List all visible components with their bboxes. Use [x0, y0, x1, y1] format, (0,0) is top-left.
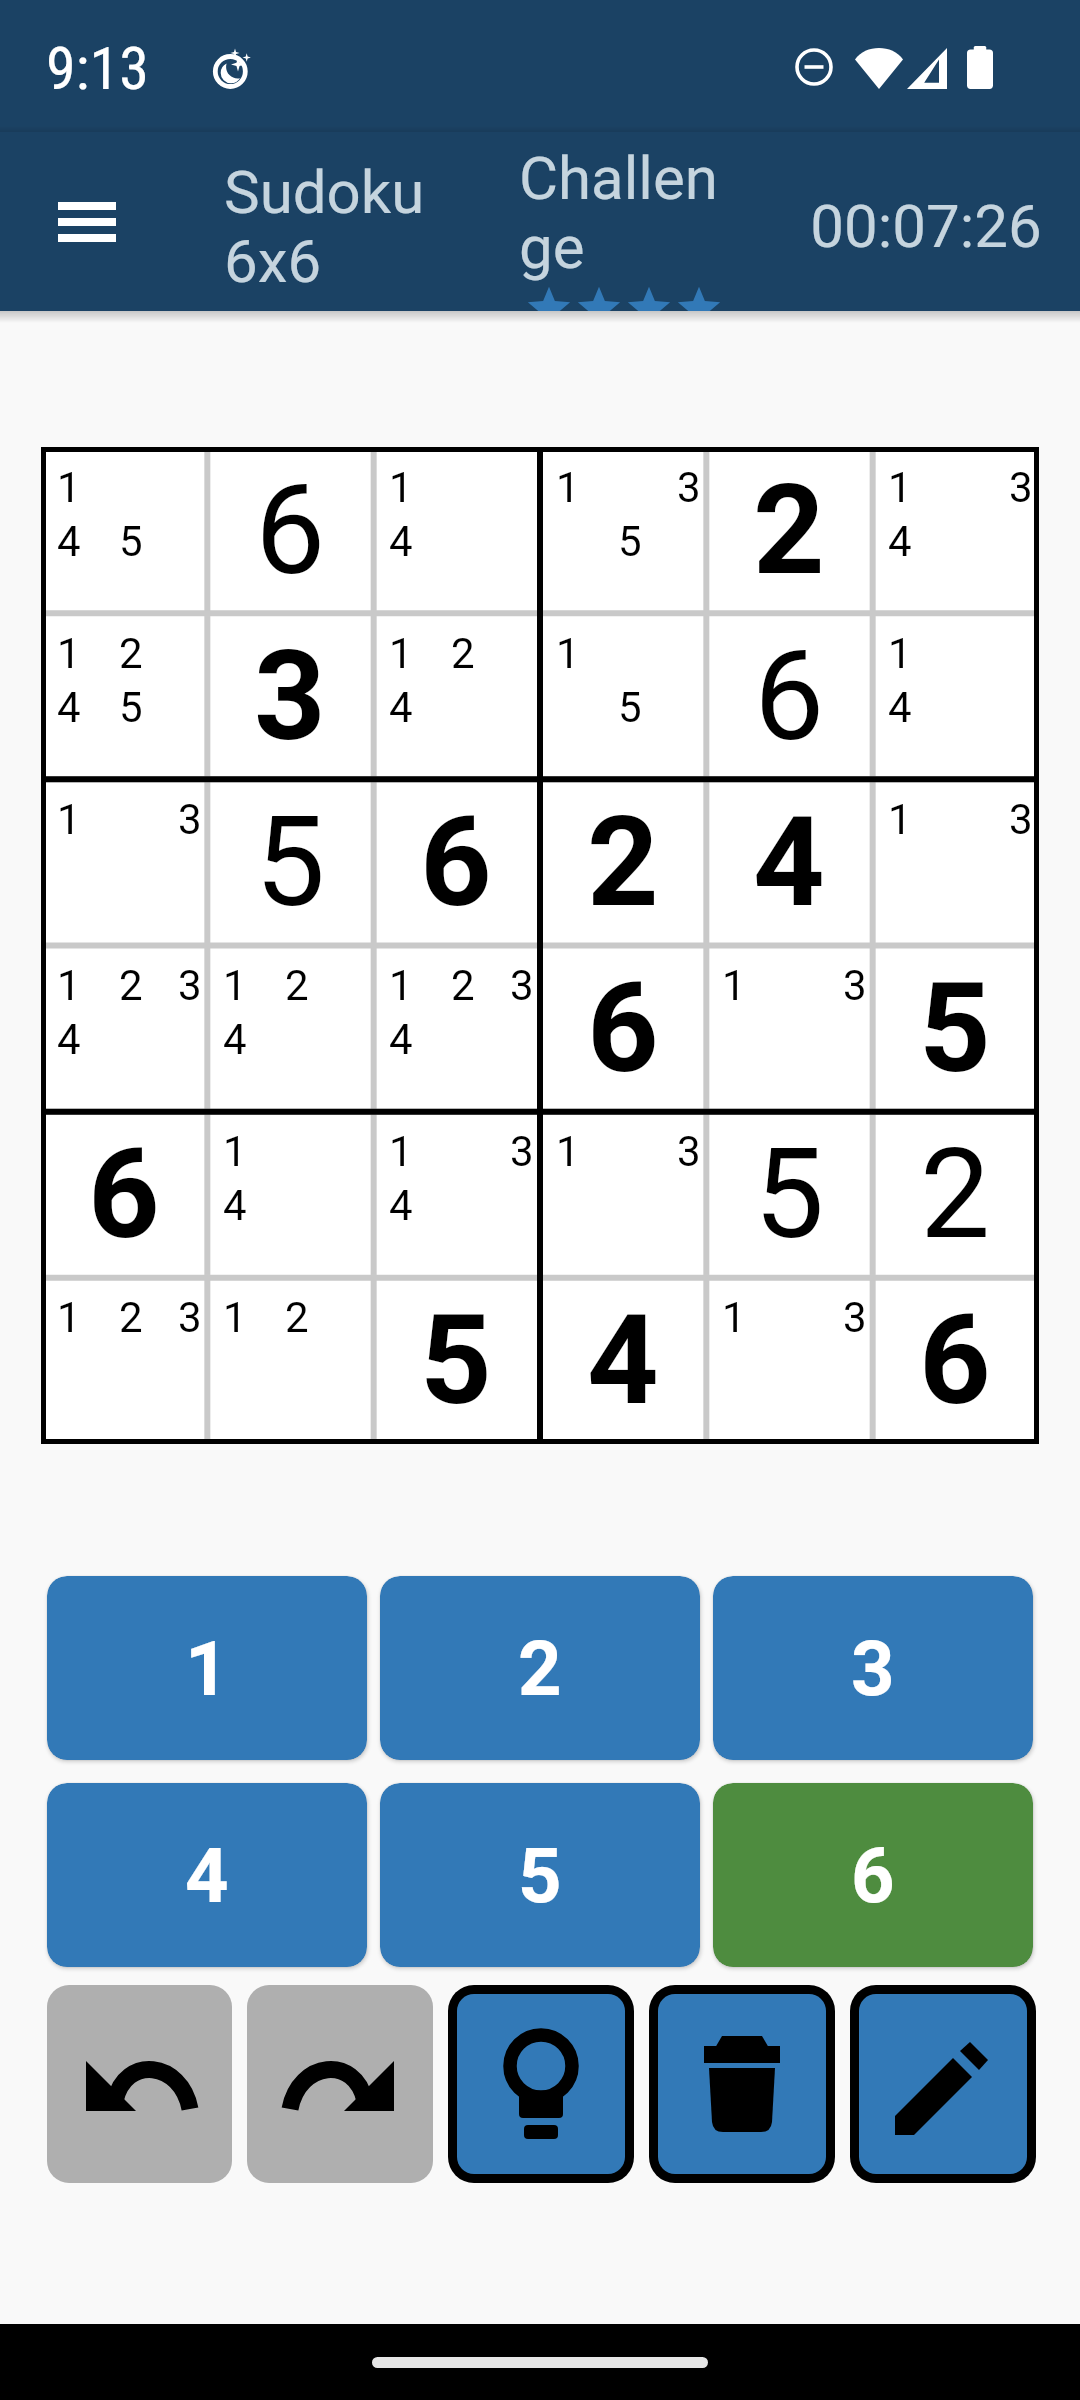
staticText: 3 — [510, 961, 534, 1010]
staticText: 6 — [587, 955, 659, 1101]
button[interactable]: 1 — [373, 613, 539, 779]
button[interactable]: 1 — [872, 613, 1038, 779]
staticText: 1 — [389, 961, 413, 1010]
button[interactable]: 2 — [706, 447, 872, 613]
button[interactable]: 1 — [41, 779, 207, 945]
staticText: 2 — [285, 1293, 309, 1342]
button[interactable]: 1 — [47, 1576, 367, 1760]
button[interactable]: 1 — [41, 1277, 207, 1443]
staticText: 9:13 — [46, 33, 149, 103]
button[interactable]: 1 — [706, 945, 872, 1111]
staticText: 1 — [223, 1293, 247, 1342]
staticText: 2 — [119, 961, 143, 1010]
button[interactable]: 6 — [207, 447, 373, 613]
staticText: 1 — [223, 1127, 247, 1176]
button[interactable]: 1 — [540, 447, 706, 613]
button[interactable]: 6 — [872, 1277, 1038, 1443]
button[interactable]: 1 — [207, 1277, 373, 1443]
staticText: Sudoku 6x6 — [224, 157, 434, 296]
button[interactable]: 4 — [706, 779, 872, 945]
button[interactable]: Undo — [47, 1985, 232, 2183]
staticText: 2 — [451, 961, 475, 1010]
staticText: 3 — [851, 1624, 895, 1713]
button[interactable]: 1 — [872, 447, 1038, 613]
button[interactable]: 5 — [706, 1111, 872, 1277]
staticText: 2 — [518, 1624, 562, 1713]
staticText: 3 — [178, 1293, 202, 1342]
staticText: 3 — [843, 1293, 867, 1342]
button[interactable]: 1 — [872, 779, 1038, 945]
button[interactable]: 1 — [373, 447, 539, 613]
staticText: 3 — [254, 623, 326, 769]
staticText: 4 — [753, 789, 825, 935]
button[interactable]: 1 — [373, 945, 539, 1111]
staticText: 4 — [389, 683, 413, 732]
staticText: 2 — [753, 457, 825, 603]
staticText: 1 — [556, 1127, 580, 1176]
staticText: 00:07:26 — [796, 191, 1056, 261]
button[interactable]: 1 — [41, 447, 207, 613]
button[interactable]: 3 — [713, 1576, 1033, 1760]
staticText: 5 — [119, 517, 143, 566]
staticText: 6 — [754, 623, 825, 769]
button[interactable]: 5 — [872, 945, 1038, 1111]
button[interactable]: 6 — [373, 779, 539, 945]
button[interactable]: 6 — [540, 945, 706, 1111]
button[interactable]: 1 — [41, 945, 207, 1111]
button[interactable]: 4 — [47, 1783, 367, 1967]
staticText: 1 — [57, 795, 81, 844]
staticText: 2 — [920, 1121, 991, 1267]
button[interactable]: 1 — [41, 613, 207, 779]
button[interactable]: 1 — [373, 1111, 539, 1277]
staticText: 1 — [888, 795, 912, 844]
staticText: 4 — [888, 683, 912, 732]
staticText: 2 — [119, 629, 143, 678]
button[interactable]: 4 — [540, 1277, 706, 1443]
button[interactable]: 6 — [706, 613, 872, 779]
staticText: 1 — [57, 629, 81, 678]
button[interactable]: 1 — [207, 1111, 373, 1277]
button[interactable]: 1 — [207, 945, 373, 1111]
staticText: 6 — [919, 1287, 991, 1433]
button[interactable]: Sudoku 6x6 — [168, 131, 478, 311]
staticText: 6 — [420, 789, 492, 935]
button[interactable]: 2 — [540, 779, 706, 945]
button[interactable]: 2 — [872, 1111, 1038, 1277]
staticText: 5 — [754, 1121, 825, 1267]
staticText: 2 — [285, 961, 309, 1010]
button[interactable]: Notes — [859, 1994, 1027, 2174]
button[interactable]: 2 — [380, 1576, 700, 1760]
staticText: Challenge — [519, 143, 729, 283]
staticText: 4 — [185, 1831, 229, 1920]
staticText: 5 — [618, 683, 642, 732]
staticText: 4 — [389, 517, 413, 566]
button[interactable]: 3 — [207, 613, 373, 779]
button[interactable]: 6 — [41, 1111, 207, 1277]
button[interactable]: Delete — [658, 1994, 826, 2174]
button[interactable]: Redo — [247, 1985, 433, 2183]
staticText: 3 — [178, 795, 202, 844]
staticText: 5 — [119, 683, 143, 732]
button[interactable]: 1 — [540, 613, 706, 779]
button[interactable]: 5 — [207, 779, 373, 945]
staticText: 3 — [1009, 795, 1033, 844]
button[interactable]: Hint — [457, 1994, 625, 2174]
button[interactable]: Menu — [20, 155, 154, 289]
staticText: 3 — [677, 463, 701, 512]
staticText: 1 — [722, 961, 746, 1010]
staticText: 1 — [888, 629, 912, 678]
staticText: 1 — [888, 463, 912, 512]
staticText: 4 — [223, 1181, 247, 1230]
staticText: 1 — [57, 1293, 81, 1342]
button[interactable]: 6 — [713, 1783, 1033, 1967]
button[interactable]: 5 — [373, 1277, 539, 1443]
staticText: 5 — [618, 517, 642, 566]
button[interactable]: 1 — [540, 1111, 706, 1277]
button[interactable]: 1 — [706, 1277, 872, 1443]
button[interactable]: Challenge — [478, 131, 788, 311]
staticText: 3 — [510, 1127, 534, 1176]
button[interactable]: 5 — [380, 1783, 700, 1967]
staticText: 4 — [389, 1181, 413, 1230]
staticText: 4 — [587, 1287, 659, 1433]
staticText: 1 — [57, 463, 81, 512]
